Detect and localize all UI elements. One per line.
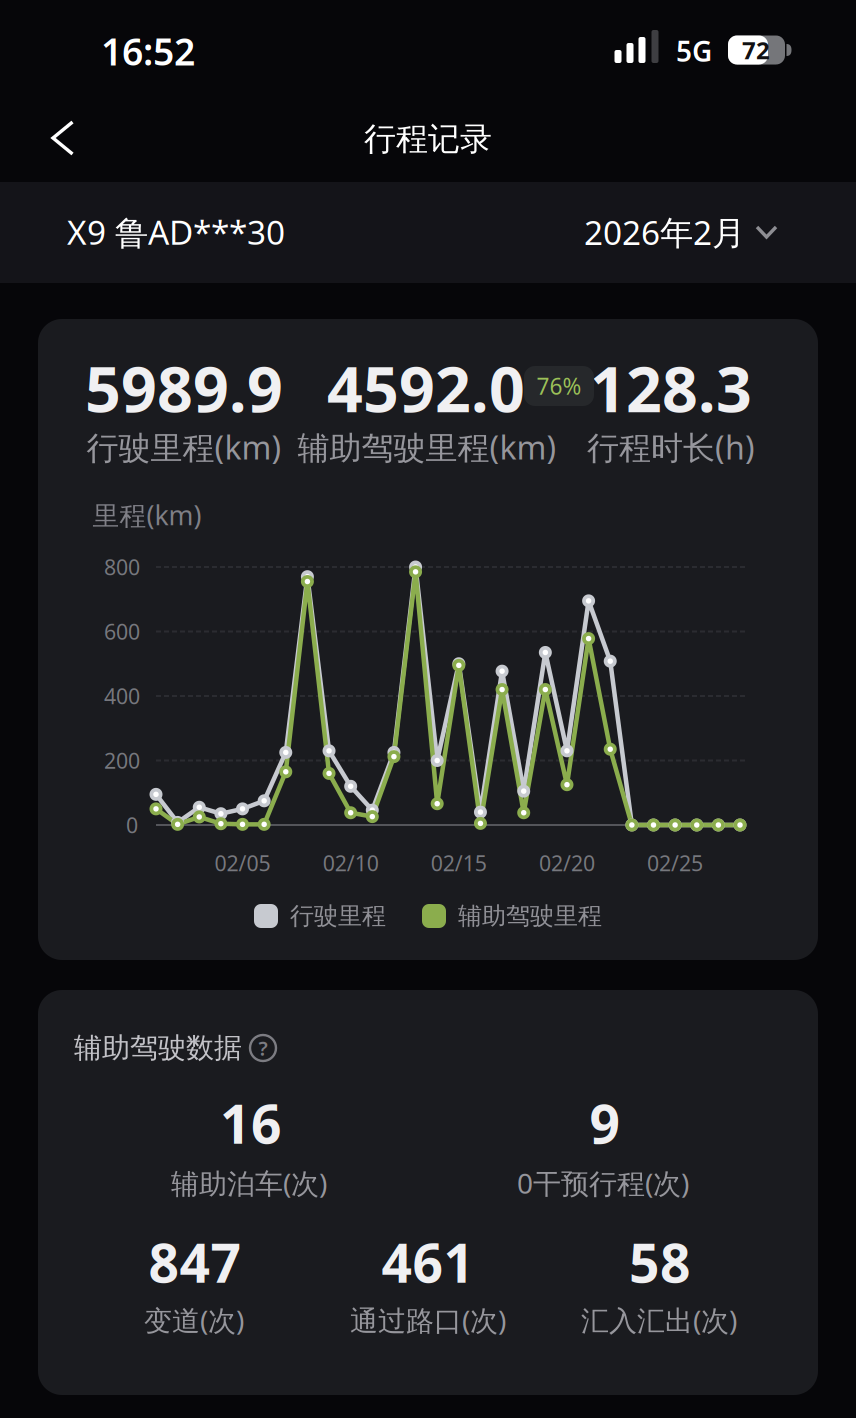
staticText: 行驶里程(km) [86,426,281,468]
staticText: 行程记录 [364,119,492,159]
staticText: 02/20 [539,849,595,877]
staticText: 9 [589,1088,620,1158]
staticText: 辅助驾驶里程(km) [297,426,556,468]
staticText: 461 [381,1227,474,1297]
staticText: 02/25 [647,849,703,877]
staticText: 2026年2月 [584,210,745,254]
button[interactable]: X9 鲁AD***30 [67,184,285,280]
button[interactable]: Back [18,99,108,179]
staticText: 0 [126,811,138,839]
staticText: 0干预行程(次) [517,1164,689,1202]
staticText: 128.3 [590,346,752,430]
staticText: X9 鲁AD***30 [67,210,285,254]
staticText: 02/15 [431,849,487,877]
staticText: 400 [104,682,140,710]
staticText: 72 [742,34,770,66]
staticText: ? [258,1035,267,1061]
staticText: 4592.0 [327,346,525,430]
button[interactable]: 辅助驾驶数据说明 [245,1030,281,1066]
staticText: 02/10 [323,849,379,877]
staticText: 通过路口(次) [350,1301,506,1339]
staticText: 02/05 [214,849,270,877]
staticText: 辅助泊车(次) [171,1164,327,1202]
staticText: 辅助驾驶数据 [74,1031,242,1065]
staticText: 800 [104,553,140,581]
staticText: 行驶里程 [290,901,386,931]
staticText: 行程时长(h) [587,426,755,468]
staticText: 里程(km) [92,497,201,533]
staticText: 5989.9 [85,346,283,430]
staticText: 16:52 [101,26,195,76]
staticText: 变道(次) [144,1301,244,1339]
button[interactable]: 2026年2月 [584,184,778,280]
staticText: 汇入汇出(次) [581,1301,737,1339]
staticText: 600 [104,617,140,646]
staticText: 58 [629,1227,691,1297]
staticText: 847 [148,1227,241,1297]
staticText: 76% [536,371,581,401]
staticText: 200 [104,746,140,775]
staticText: 辅助驾驶里程 [458,901,602,931]
staticText: 16 [220,1088,282,1158]
staticText: 5G [676,32,712,70]
